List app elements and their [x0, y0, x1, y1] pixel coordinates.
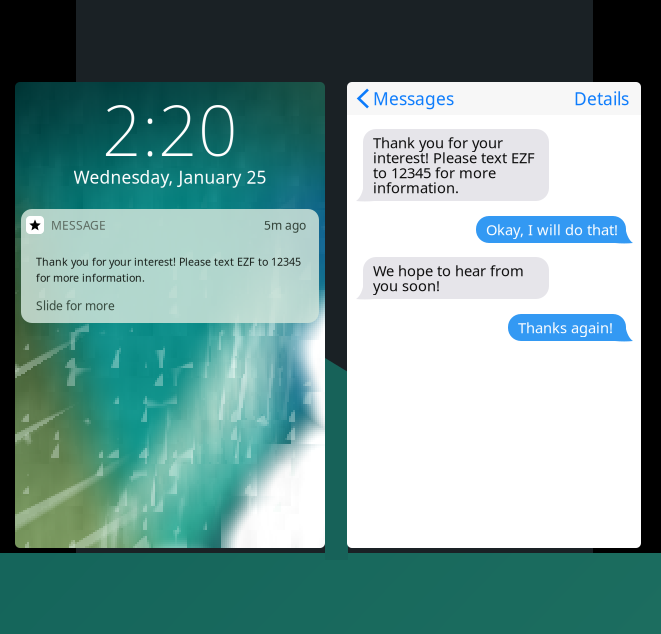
staticText: Okay, I will do that!	[486, 220, 618, 239]
staticText: Details	[574, 87, 629, 110]
staticText: information.	[373, 178, 459, 197]
staticText: Thank you for your interest! Please text…	[36, 254, 301, 269]
staticText: Messages	[373, 87, 454, 110]
staticText: Slide for more	[36, 297, 115, 313]
button[interactable]: Details	[566, 82, 641, 115]
staticText: Thank you for your	[373, 133, 503, 152]
staticText: interest! Please text EZF	[373, 148, 535, 167]
button[interactable]: MESSAGE	[21, 209, 319, 323]
staticText: Wednesday, January 25	[73, 165, 266, 188]
button[interactable]: Messages	[347, 82, 460, 115]
staticText: We hope to hear from	[373, 261, 524, 280]
staticText: for more information.	[36, 270, 145, 285]
staticText: 2:20	[102, 83, 238, 175]
staticText: Thanks again!	[518, 318, 613, 337]
staticText: MESSAGE	[51, 217, 106, 233]
staticText: you soon!	[373, 276, 440, 295]
staticText: to 12345 for more	[373, 163, 496, 182]
staticText: 5m ago	[264, 217, 306, 233]
